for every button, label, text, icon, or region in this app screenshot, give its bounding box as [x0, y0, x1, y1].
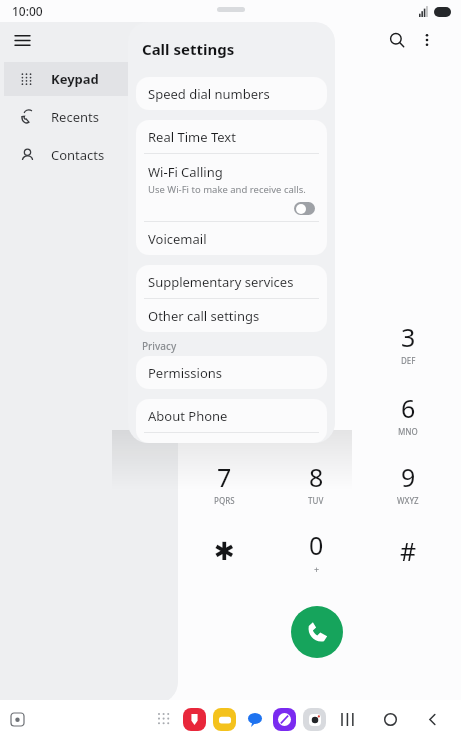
staticText: Privacy — [142, 339, 177, 353]
button[interactable]: Search — [383, 26, 411, 54]
button[interactable]: Contacts — [4, 138, 174, 172]
button[interactable]: More options — [413, 26, 441, 54]
staticText: WXYZ — [397, 495, 419, 506]
staticText: 9 — [401, 460, 416, 494]
staticText: 6 — [401, 391, 416, 425]
staticText: GHI — [217, 426, 232, 437]
button[interactable]: 0 — [282, 525, 350, 577]
button[interactable]: 1 — [190, 317, 258, 369]
staticText: 1 — [217, 326, 232, 360]
staticText: # — [400, 534, 417, 568]
button[interactable]: Voicemail — [136, 222, 327, 255]
button[interactable]: Recents — [333, 704, 363, 734]
staticText: Call settings — [142, 39, 235, 59]
button[interactable]: 7 — [190, 457, 258, 509]
button[interactable]: 3 — [374, 317, 442, 369]
staticText: DEF — [401, 355, 416, 366]
staticText: Contacts — [51, 146, 105, 164]
staticText: 3 — [401, 320, 416, 354]
staticText: About Phone — [148, 407, 228, 425]
button[interactable]: Real Time Text — [136, 120, 327, 153]
staticText: TUV — [308, 495, 324, 506]
staticText: 0 — [309, 528, 324, 562]
button[interactable]: 6 — [374, 388, 442, 440]
button[interactable]: App — [303, 708, 326, 731]
staticText: Voicemail — [148, 230, 207, 248]
staticText: PQRS — [214, 495, 235, 506]
button[interactable]: Recent apps panel — [6, 708, 28, 730]
button[interactable]: Call — [291, 606, 343, 658]
button[interactable]: 5 — [282, 388, 350, 440]
staticText: 4 — [217, 391, 232, 425]
button[interactable]: App — [183, 708, 206, 731]
staticText: Keypad — [51, 70, 99, 88]
button[interactable]: App — [213, 708, 236, 731]
button[interactable]: Supplementary services — [136, 265, 327, 298]
staticText: ABC — [308, 355, 324, 366]
button[interactable]: 8 — [282, 457, 350, 509]
button[interactable]: About Phone — [136, 399, 327, 432]
button[interactable]: Menu — [8, 26, 36, 54]
staticText: Recents — [51, 108, 99, 126]
button[interactable]: 2 — [282, 317, 350, 369]
button[interactable]: Home — [375, 704, 405, 734]
button[interactable]: # — [374, 525, 442, 577]
staticText: JKL — [311, 426, 323, 437]
button[interactable]: Recents — [4, 100, 174, 134]
staticText: 10:00 — [12, 3, 43, 19]
button[interactable]: Other call settings — [136, 299, 327, 332]
button[interactable]: ✱ — [190, 525, 258, 577]
staticText: Other call settings — [148, 307, 260, 325]
button[interactable]: 9 — [374, 457, 442, 509]
staticText: Real Time Text — [148, 128, 236, 146]
staticText: 7 — [217, 460, 232, 494]
button[interactable]: Wi-Fi Calling — [136, 154, 327, 221]
staticText: Speed dial numbers — [148, 85, 270, 103]
staticText: MNO — [398, 426, 418, 437]
staticText: Wi-Fi Calling — [148, 163, 223, 181]
button[interactable]: All apps — [151, 706, 177, 732]
staticText: Permissions — [148, 364, 223, 382]
button[interactable]: 4 — [190, 388, 258, 440]
button[interactable]: Permissions — [136, 356, 327, 389]
staticText: 2 — [309, 320, 324, 354]
button[interactable]: Back — [417, 704, 447, 734]
staticText: Supplementary services — [148, 273, 294, 291]
staticText: Use Wi-Fi to make and receive calls. — [148, 183, 306, 196]
button[interactable]: Speed dial numbers — [136, 77, 327, 110]
button[interactable]: Wi-Fi Calling toggle — [294, 202, 315, 215]
staticText: 8 — [309, 460, 324, 494]
staticText: + — [314, 563, 320, 575]
button[interactable]: App — [243, 708, 266, 731]
staticText: ✱ — [214, 537, 235, 566]
staticText: 5 — [309, 391, 324, 425]
button[interactable]: App — [273, 708, 296, 731]
button[interactable]: Keypad — [4, 62, 174, 96]
